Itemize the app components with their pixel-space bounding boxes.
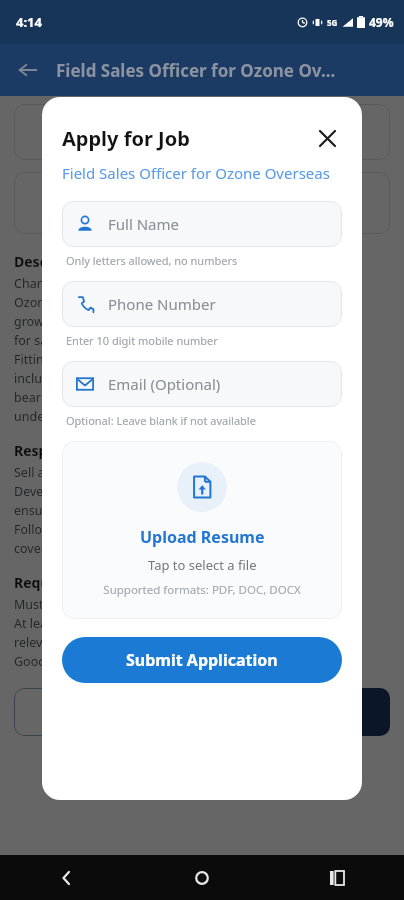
staticText: Requirements bbox=[14, 573, 113, 592]
button[interactable]: Full Name bbox=[62, 201, 342, 247]
staticText: Chandigarh based company, Ozone Overseas… bbox=[14, 275, 360, 292]
staticText: ensure secondary sales through regular f… bbox=[14, 502, 315, 519]
staticText: 4:14 bbox=[16, 13, 42, 31]
staticText: Tap to select a file bbox=[148, 556, 257, 574]
button[interactable]: Recent apps bbox=[320, 861, 354, 895]
staticText: bear the responsibility of achieving mon… bbox=[14, 389, 317, 406]
staticText: Email (Optional) bbox=[108, 374, 221, 394]
button[interactable]: Email (Optional) bbox=[62, 361, 342, 407]
staticText: relevant experience in hardware / buildi… bbox=[14, 634, 324, 651]
staticText: Must have 1-3 years of field sales exper… bbox=[14, 596, 279, 613]
button[interactable]: Upload Resume bbox=[62, 441, 342, 619]
button[interactable]: Apply Now bbox=[208, 688, 390, 736]
staticText: Follow up with existing clients and expa… bbox=[14, 521, 307, 538]
staticText: Responsibilities bbox=[14, 441, 124, 460]
staticText: Description bbox=[14, 252, 95, 271]
staticText: Phone Number bbox=[108, 294, 216, 314]
button[interactable]: Submit Application bbox=[62, 637, 342, 683]
staticText: Apply for Job bbox=[62, 125, 312, 152]
button[interactable]: Back bbox=[50, 861, 84, 895]
staticText: Field Sales Officer for Ozone Overseas bbox=[62, 163, 330, 183]
staticText: 49% bbox=[369, 14, 394, 30]
staticText: Develop and maintain relationships with … bbox=[14, 483, 323, 500]
staticText: Upload Resume bbox=[140, 526, 265, 548]
staticText: Good negotiation and interpersonal abili… bbox=[14, 653, 277, 670]
staticText: Ozone Overseas is a reputed manufacturer… bbox=[14, 294, 359, 311]
staticText: Supported formats: PDF, DOC, DOCX bbox=[103, 582, 301, 598]
staticText: Sell architectural hardware products to … bbox=[14, 464, 292, 481]
button[interactable]: Phone Number bbox=[62, 281, 342, 327]
staticText: Optional: Leave blank if not available bbox=[66, 413, 256, 428]
button[interactable]: Close bbox=[312, 123, 342, 153]
staticText: 5G bbox=[327, 17, 338, 28]
staticText: Submit Application bbox=[126, 649, 278, 671]
staticText: Field Sales Officer for Ozone Ov... bbox=[56, 59, 336, 82]
staticText: growing. We are seeking a Field Sales Of… bbox=[14, 313, 348, 330]
staticText: Full Name bbox=[108, 214, 179, 234]
staticText: Enter 10 digit mobile number bbox=[66, 333, 218, 348]
staticText: for sales of architectural hardware acro… bbox=[14, 332, 334, 349]
button[interactable]: Home bbox=[185, 861, 219, 895]
staticText: At least graduate with good communicatio… bbox=[14, 615, 307, 632]
staticText: under the guidance of the regional sales… bbox=[14, 408, 310, 425]
staticText: Only letters allowed, no numbers bbox=[66, 253, 238, 268]
staticText: including locks, hinges, handles, railin… bbox=[14, 370, 332, 387]
staticText: Fittings, Door Hardware, Glass Fittings … bbox=[14, 351, 335, 368]
staticText: coverage across assigned geography and r… bbox=[14, 540, 302, 557]
button[interactable]: Refer bbox=[14, 688, 196, 736]
button[interactable]: Back bbox=[8, 50, 48, 90]
